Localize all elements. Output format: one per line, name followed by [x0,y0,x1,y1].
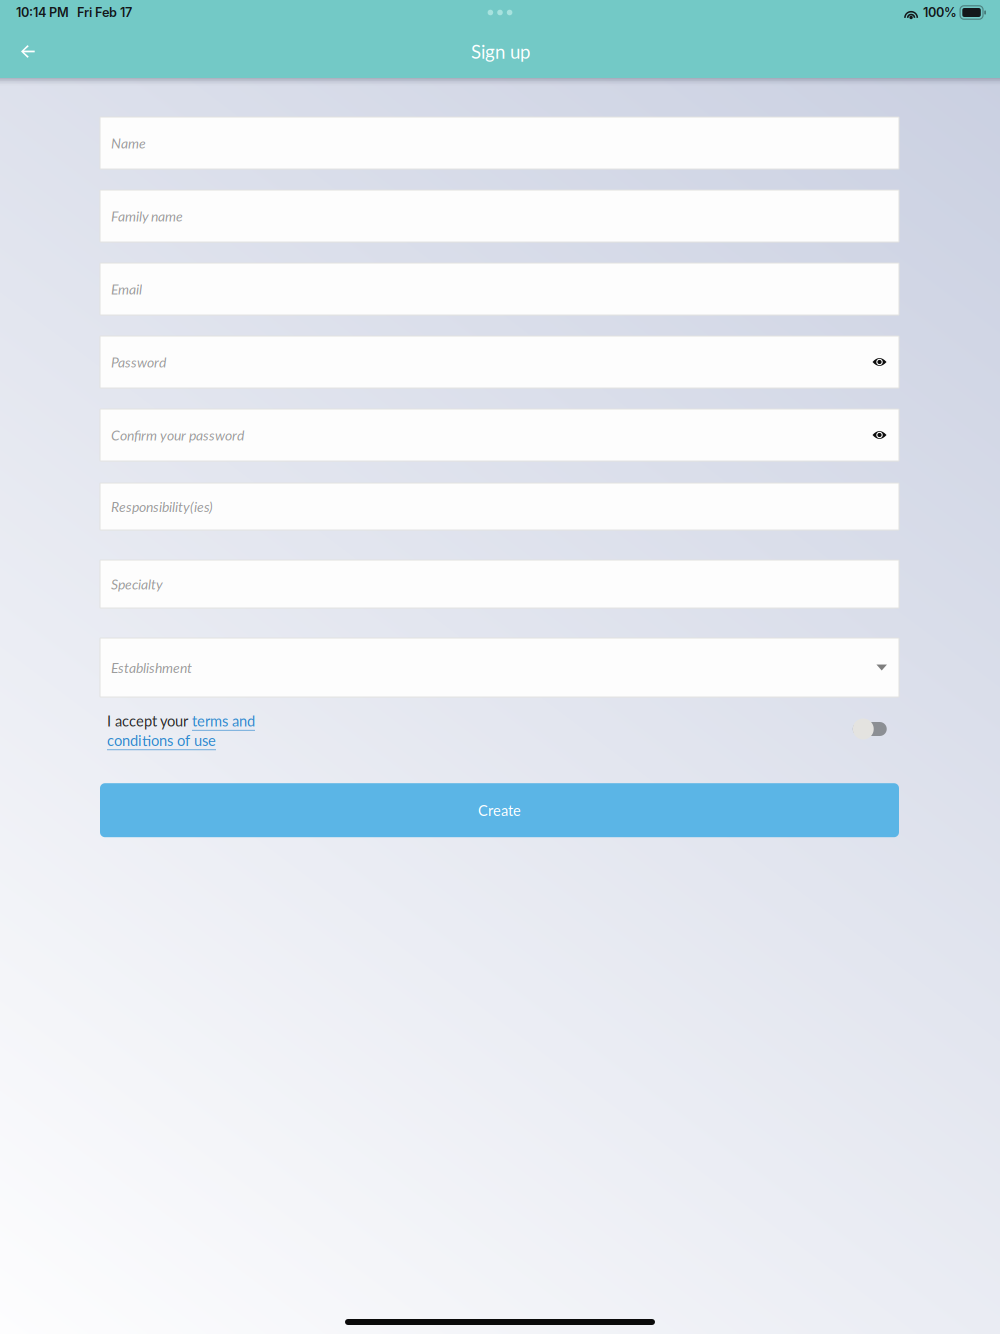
staticText: Establishment [111,659,192,676]
staticText: Fri Feb 17 [77,5,132,20]
staticText: Family name [111,208,183,224]
staticText: Sign up [471,40,530,63]
staticText: Responsibility(ies) [111,498,213,515]
staticText: 10:14 PM [16,5,69,20]
staticText: Name [111,135,146,151]
staticText: conditions of use [107,732,216,749]
staticText: terms and [192,712,255,730]
staticText: Specialty [111,576,163,592]
staticText: I accept your [107,712,192,730]
button[interactable]: Create [100,783,899,837]
staticText: Confirm your password [111,427,244,443]
staticText: Create [478,801,521,819]
staticText: 100% [923,5,957,20]
button[interactable]: Accept terms and conditions [851,716,888,742]
staticText: Password [111,354,166,370]
staticText: Email [111,281,142,297]
button[interactable]: Back [0,25,56,78]
